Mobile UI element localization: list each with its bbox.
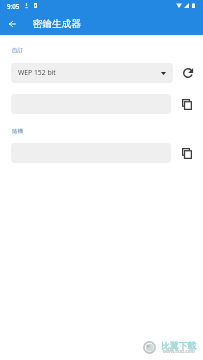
staticText: WEP 152 bit bbox=[18, 68, 56, 77]
staticText: 隨機 bbox=[12, 128, 23, 135]
staticText: www.fxxz.com bbox=[163, 348, 195, 354]
button[interactable]: WEP 152 bit bbox=[11, 63, 173, 83]
staticText: 密鑰生成器 bbox=[33, 18, 81, 30]
staticText: 比翼下載 bbox=[161, 341, 197, 352]
staticText: 自訂 bbox=[12, 47, 23, 54]
staticText: 9:05 bbox=[7, 2, 20, 10]
button[interactable]: Copy bbox=[177, 95, 196, 114]
button[interactable]: Copy bbox=[177, 144, 196, 163]
button[interactable]: Back bbox=[2, 13, 23, 34]
button[interactable]: Refresh bbox=[179, 64, 197, 82]
